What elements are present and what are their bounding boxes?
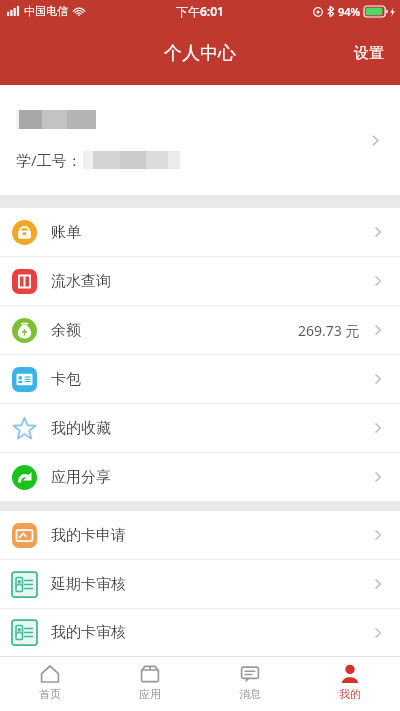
staticText: 卡包 — [51, 370, 81, 389]
staticText: 首页 — [39, 687, 61, 701]
staticText: 中国电信 — [24, 4, 68, 18]
staticText: 设置 — [354, 44, 384, 63]
staticText: 账单 — [51, 223, 81, 242]
button[interactable]: 我的卡申请 — [0, 511, 400, 559]
staticText: 我的卡审核 — [51, 623, 126, 642]
staticText: 学/工号： — [16, 150, 82, 170]
staticText: 流水查询 — [51, 272, 111, 291]
button[interactable]: 首页 — [0, 657, 100, 711]
staticText: 个人中心 — [164, 42, 236, 65]
button[interactable]: 设置 — [338, 32, 400, 75]
staticText: 余额 — [51, 321, 81, 340]
staticText: 94% — [338, 4, 361, 19]
button[interactable]: 我的收藏 — [0, 404, 400, 452]
button[interactable]: 卡包 — [0, 355, 400, 403]
staticText: 我的卡申请 — [51, 526, 126, 545]
staticText: 应用分享 — [51, 468, 111, 487]
staticText: 269.73 元 — [298, 321, 360, 340]
staticText: 我的收藏 — [51, 419, 111, 438]
button[interactable]: 我的 — [300, 657, 400, 711]
button[interactable]: 应用 — [100, 657, 200, 711]
button[interactable]: 余额 — [0, 306, 400, 354]
button[interactable]: 学/工号： — [0, 85, 400, 195]
button[interactable]: 消息 — [200, 657, 300, 711]
staticText: 延期卡审核 — [51, 575, 126, 594]
button[interactable]: 账单 — [0, 208, 400, 256]
button[interactable]: 流水查询 — [0, 257, 400, 305]
staticText: 应用 — [139, 687, 161, 701]
staticText: 消息 — [239, 687, 261, 701]
button[interactable]: 我的卡审核 — [0, 609, 400, 656]
button[interactable]: 延期卡审核 — [0, 560, 400, 608]
staticText: 下午6:01 — [176, 3, 224, 19]
staticText: 我的 — [339, 687, 361, 701]
button[interactable]: 应用分享 — [0, 453, 400, 501]
